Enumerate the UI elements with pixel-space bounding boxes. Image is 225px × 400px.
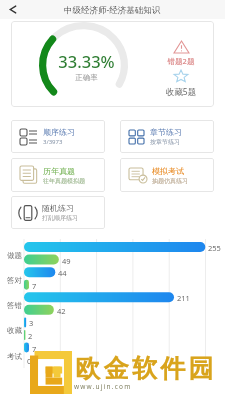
staticText: 211 bbox=[177, 293, 190, 303]
button[interactable]: 章节练习 bbox=[120, 120, 214, 153]
button[interactable]: 历年真题 bbox=[11, 158, 105, 192]
staticText: 0 bbox=[27, 356, 32, 366]
staticText: 答错 bbox=[7, 301, 22, 310]
button[interactable]: Back bbox=[0, 0, 24, 19]
button[interactable]: 随机练习 bbox=[11, 196, 105, 229]
staticText: 考试 bbox=[7, 352, 22, 361]
staticText: 打乱顺序练习 bbox=[42, 214, 78, 222]
staticText: 顺序练习 bbox=[43, 127, 75, 137]
staticText: 抽题仿真练习 bbox=[152, 177, 188, 185]
staticText: 7 bbox=[32, 344, 37, 354]
staticText: 2 bbox=[28, 331, 33, 341]
staticText: 错题2题 bbox=[139, 56, 214, 66]
staticText: 中级经济师-经济基础知识 bbox=[64, 4, 161, 16]
staticText: 历年真题 bbox=[43, 166, 75, 176]
staticText: 49 bbox=[62, 256, 71, 266]
button[interactable]: 顺序练习 bbox=[11, 120, 105, 153]
staticText: 模拟考试 bbox=[152, 166, 184, 176]
staticText: 255 bbox=[208, 243, 221, 253]
staticText: 做题 bbox=[7, 251, 22, 260]
staticText: 收藏 bbox=[7, 326, 22, 335]
staticText: 往年真题模拟题 bbox=[43, 177, 85, 185]
staticText: 答对 bbox=[7, 276, 22, 285]
button[interactable]: 模拟考试 bbox=[120, 158, 214, 192]
staticText: 随机练习 bbox=[42, 203, 74, 213]
staticText: 欧金软件园 bbox=[74, 353, 215, 384]
staticText: 章节练习 bbox=[150, 127, 182, 137]
staticText: www.ujin.com bbox=[74, 382, 132, 391]
button[interactable]: 错题与收藏 bbox=[139, 41, 214, 98]
staticText: 按章节练习 bbox=[150, 138, 180, 146]
staticText: 44 bbox=[58, 268, 67, 278]
staticText: 33.33% bbox=[58, 50, 115, 72]
staticText: 3/3973 bbox=[43, 138, 63, 146]
staticText: 收藏5题 bbox=[139, 86, 214, 98]
button[interactable]: 33.33% bbox=[11, 21, 214, 107]
staticText: 3 bbox=[29, 318, 34, 328]
staticText: 7 bbox=[32, 281, 37, 291]
staticText: 正确率 bbox=[75, 73, 98, 82]
staticText: 42 bbox=[57, 306, 66, 316]
